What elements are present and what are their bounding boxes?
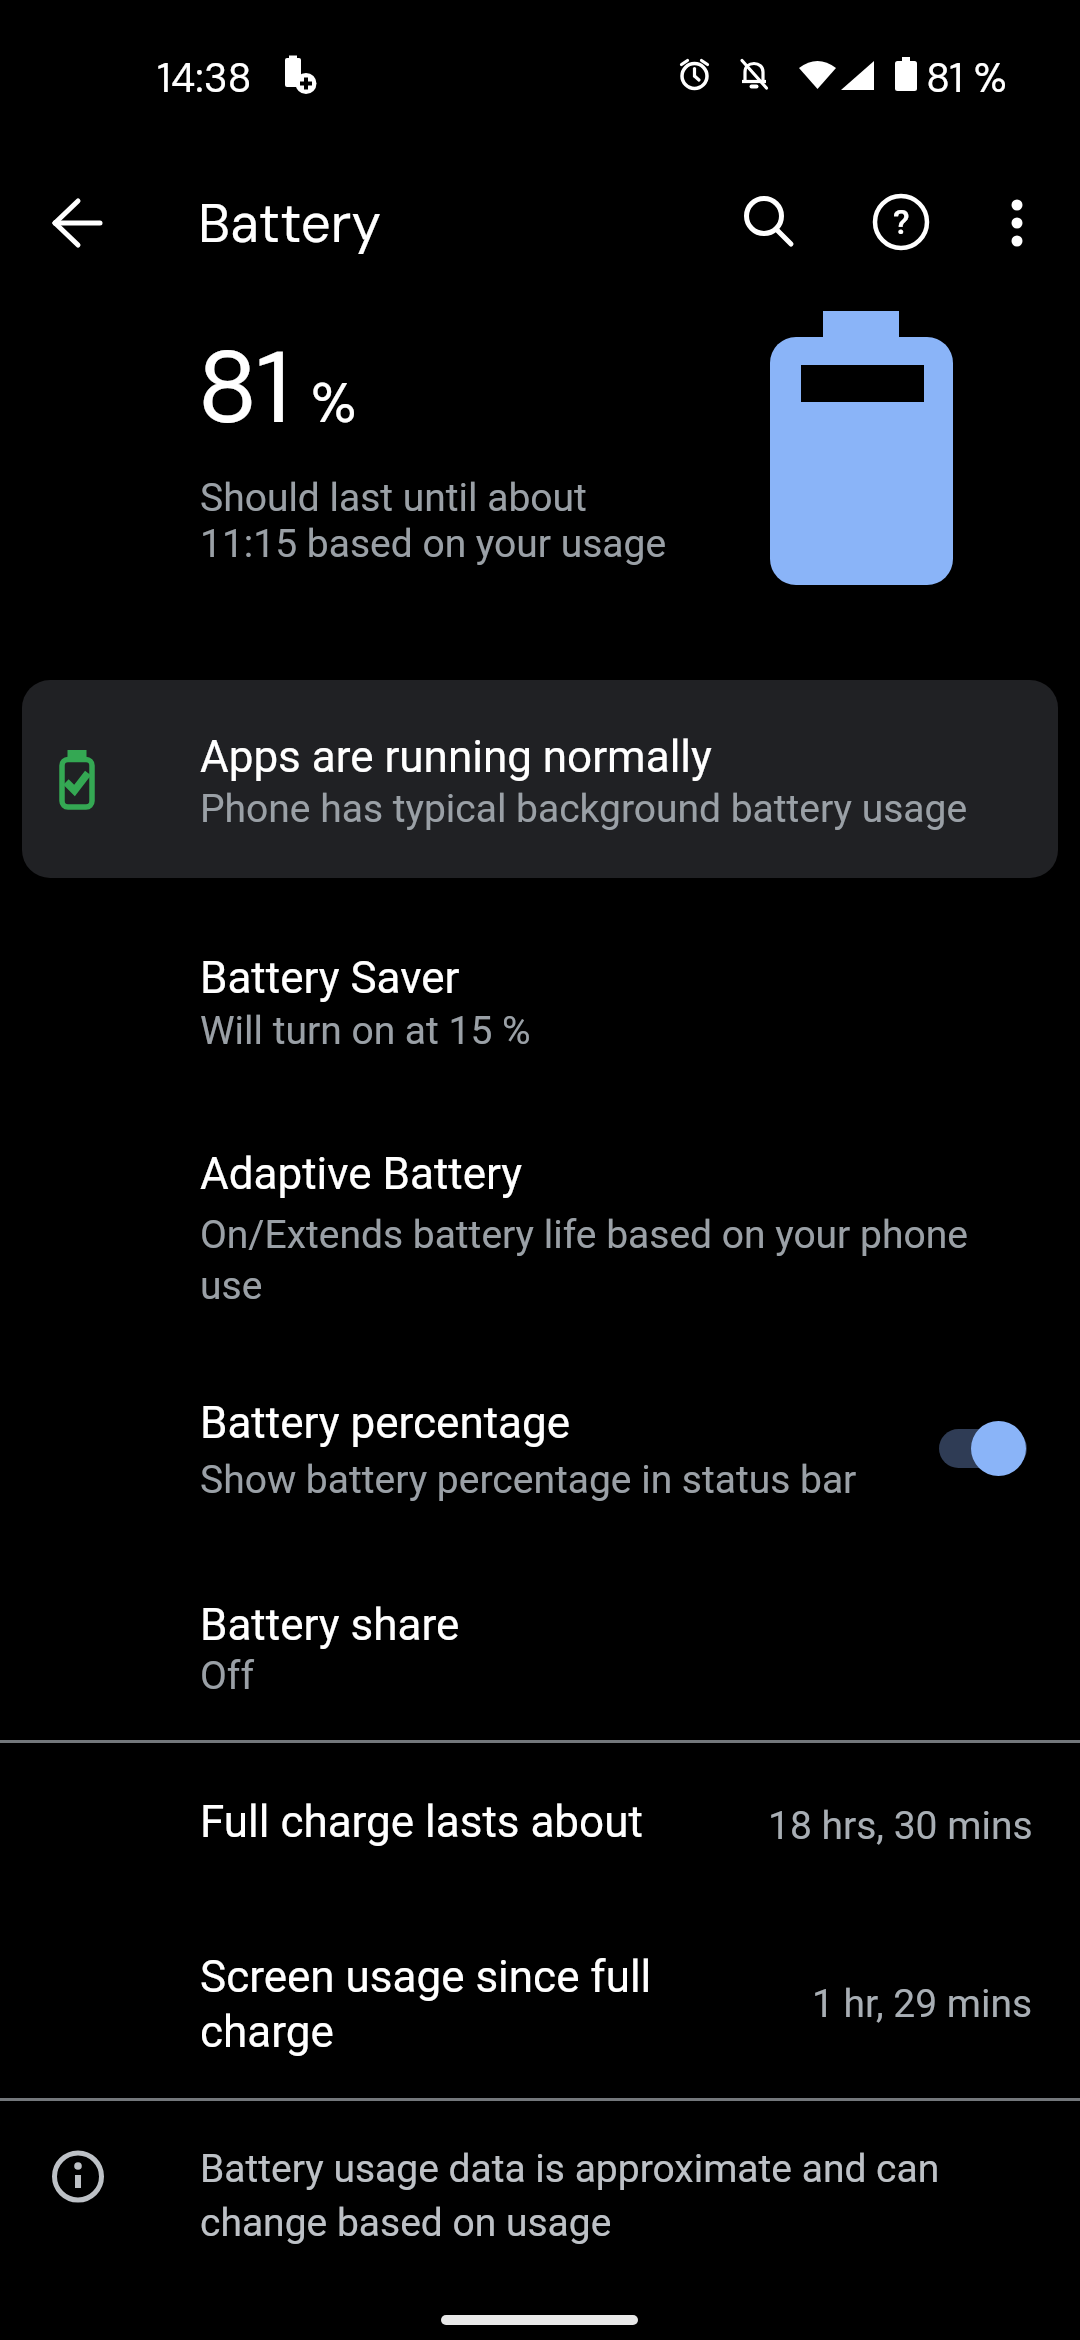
button[interactable] <box>717 174 813 270</box>
button[interactable]: Apps are running normally <box>22 680 1058 878</box>
button[interactable] <box>969 174 1065 270</box>
staticText: Show battery percentage in status bar <box>200 1457 857 1503</box>
staticText: Adaptive Battery <box>200 1148 523 1200</box>
button[interactable]: Battery percentage <box>0 1374 1080 1544</box>
staticText: Battery usage data is approximate and ca… <box>200 2146 940 2245</box>
button[interactable]: Screen usage since full charge <box>0 1900 1080 2098</box>
staticText: ? <box>893 202 910 242</box>
staticText: Screen usage since full charge <box>200 1951 652 2058</box>
staticText: 81 <box>197 322 291 454</box>
staticText: % <box>311 367 357 439</box>
button[interactable]: Adaptive Battery <box>0 1125 1080 1330</box>
staticText: Will turn on at 15 % <box>200 1008 531 1054</box>
staticText: Phone has typical background battery usa… <box>200 786 968 832</box>
button[interactable]: Battery share <box>0 1576 1080 1740</box>
staticText: Battery share <box>200 1599 460 1651</box>
staticText: Off <box>200 1653 254 1699</box>
button[interactable] <box>939 1429 1027 1468</box>
staticText: 14:38 <box>157 52 252 104</box>
button[interactable]: Battery Saver <box>0 930 1080 1100</box>
button[interactable]: Full charge lasts about <box>0 1743 1080 1900</box>
staticText: On/Extends battery life based on your ph… <box>200 1212 968 1309</box>
staticText: 81 % <box>926 52 1007 104</box>
staticText: Full charge lasts about <box>200 1796 643 1848</box>
button[interactable]: ? <box>853 174 949 270</box>
button[interactable] <box>971 1421 1026 1476</box>
staticText: 18 hrs, 30 mins <box>768 1803 1033 1849</box>
staticText: Battery Saver <box>200 952 460 1004</box>
staticText: Battery <box>198 189 382 258</box>
staticText: Should last until about 11:15 based on y… <box>200 475 667 567</box>
button[interactable] <box>30 176 124 270</box>
staticText: Battery percentage <box>200 1397 571 1449</box>
staticText: Apps are running normally <box>200 731 712 783</box>
staticText: 1 hr, 29 mins <box>812 1981 1033 2027</box>
